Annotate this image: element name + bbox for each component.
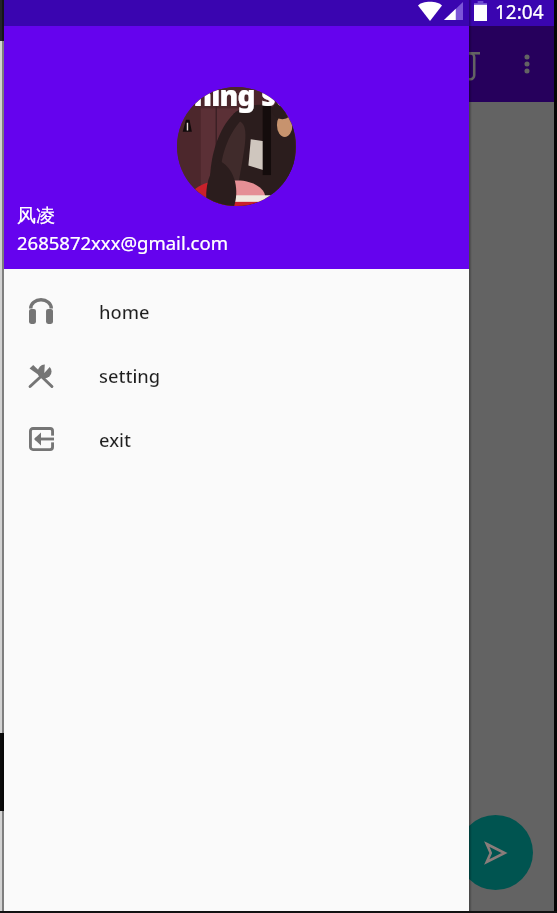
staticText: setting (99, 363, 161, 388)
staticText: home (99, 299, 150, 324)
button[interactable]: exit (4, 407, 469, 471)
staticText: 2685872xxx@gmail.com (17, 230, 228, 255)
button[interactable]: Playlist (447, 52, 477, 82)
button[interactable]: Send (458, 815, 533, 890)
staticText: exit (99, 427, 132, 452)
button[interactable]: home (4, 279, 469, 343)
staticText: 风凌 (17, 204, 55, 228)
staticText: 12:04 (495, 0, 544, 25)
button[interactable]: setting (4, 343, 469, 407)
staticText: ming sta (184, 87, 296, 114)
button[interactable]: More options (503, 40, 551, 88)
